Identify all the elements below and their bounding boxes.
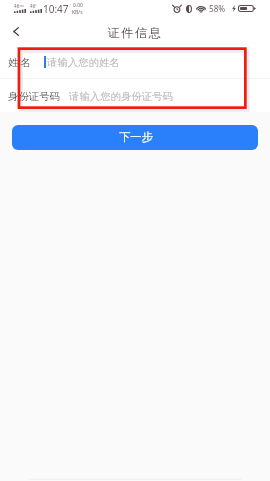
staticText: 46ᵀᴹ: [14, 3, 24, 9]
staticText: 请输入您的身份证号码: [69, 90, 173, 103]
button[interactable]: 姓名: [0, 45, 270, 78]
staticText: 0.00: [73, 2, 83, 9]
staticText: 证件信息: [107, 25, 163, 40]
staticText: KB/s: [72, 9, 83, 16]
staticText: 10:47: [43, 2, 69, 16]
staticText: 姓名: [8, 56, 34, 69]
button[interactable]: 身份证号码: [0, 79, 270, 112]
button[interactable]: Back: [0, 18, 31, 45]
staticText: 46⁺: [30, 3, 37, 9]
staticText: 下一步: [119, 130, 153, 144]
button[interactable]: 下一步: [12, 125, 258, 150]
staticText: 身份证号码: [8, 90, 60, 103]
staticText: 58%: [209, 3, 226, 14]
staticText: 请输入您的姓名: [47, 56, 120, 69]
